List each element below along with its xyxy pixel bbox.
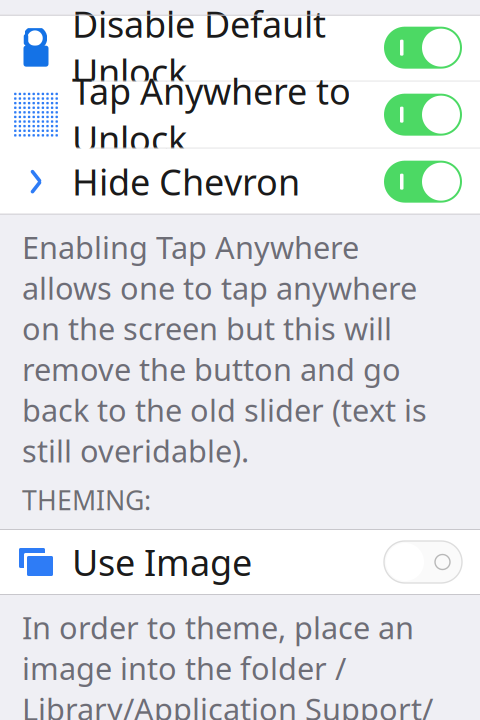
button[interactable]: Tap Anywhere to Unlock	[0, 82, 480, 148]
staticText: THEMING:	[22, 482, 151, 518]
button[interactable]: Hide Chevron	[0, 149, 480, 215]
staticText: In order to theme, place an image into t…	[22, 607, 445, 720]
staticText: Disable Default Unlock	[72, 0, 326, 95]
staticText: Use Image	[72, 538, 252, 586]
button[interactable]: Disable Default Unlock	[0, 15, 480, 81]
staticText: Tap Anywhere to Unlock	[72, 67, 351, 162]
staticText: Enabling Tap Anywhere allows one to tap …	[22, 227, 427, 471]
button[interactable]: Use Image	[0, 529, 480, 595]
staticText: Hide Chevron	[72, 158, 300, 205]
